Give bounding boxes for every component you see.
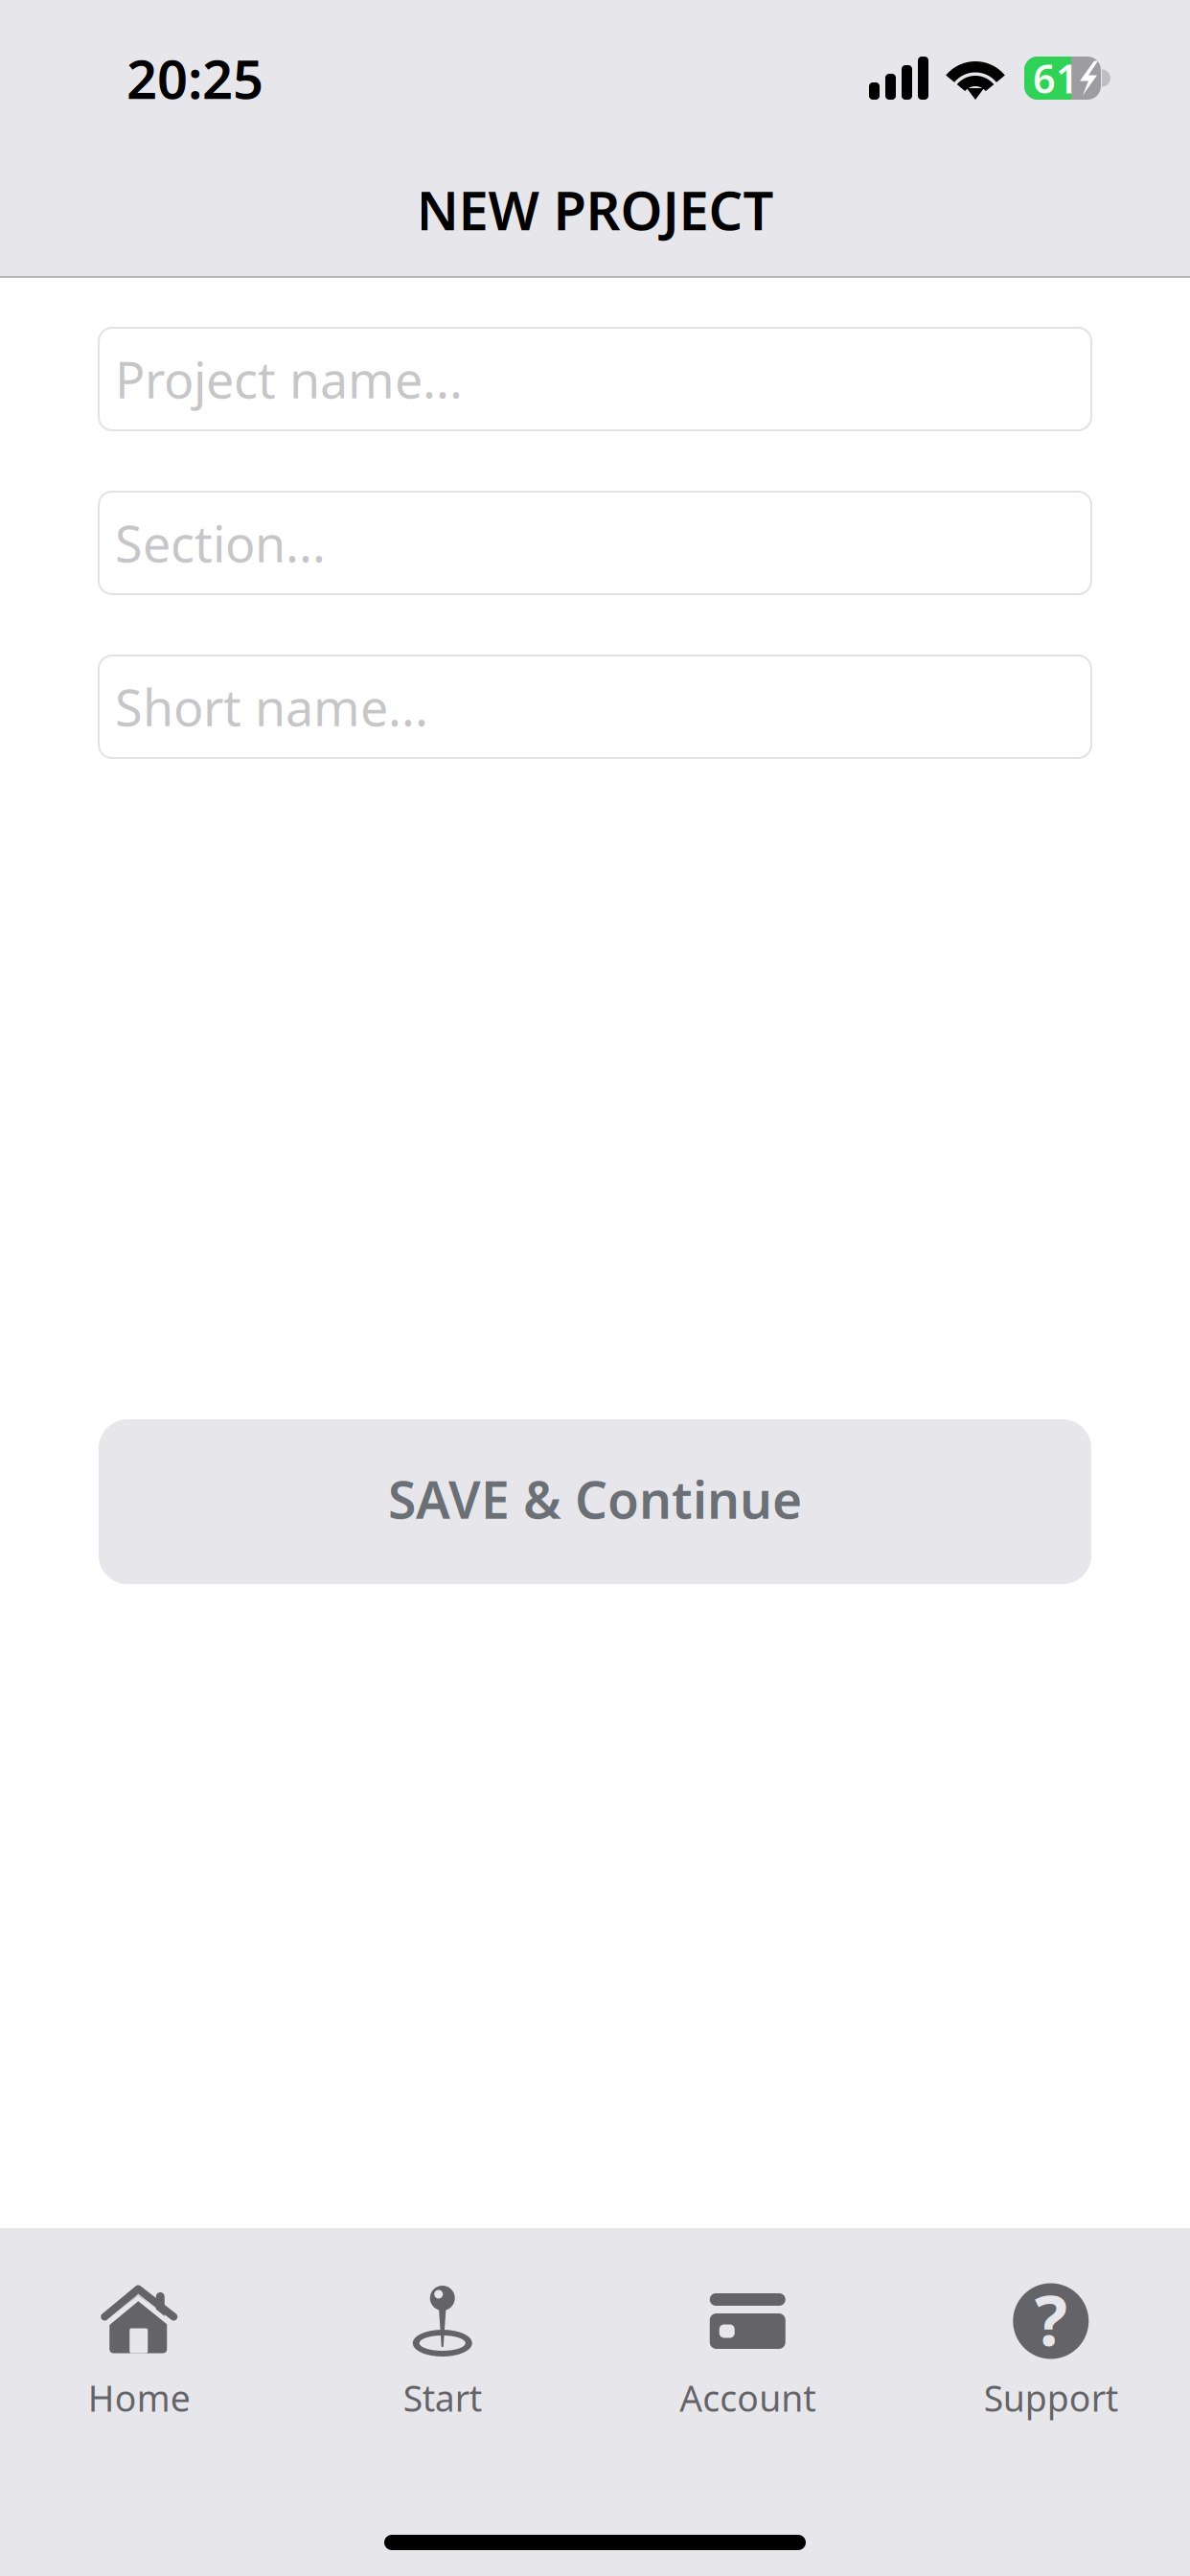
staticText: Project name...	[115, 346, 463, 412]
staticText: Support	[984, 2374, 1118, 2422]
staticText: 61	[1033, 52, 1079, 104]
staticText: Start	[403, 2374, 482, 2422]
button[interactable]: Start	[297, 2283, 595, 2417]
staticText: ?	[1035, 2273, 1067, 2365]
staticText: Home	[88, 2374, 190, 2422]
button[interactable]: Section...	[99, 492, 1091, 594]
staticText: Short name...	[115, 674, 428, 740]
button[interactable]: Account	[595, 2283, 892, 2417]
staticText: SAVE & Continue	[388, 1465, 802, 1533]
staticText: NEW PROJECT	[416, 174, 774, 245]
staticText: 20:25	[126, 42, 263, 114]
staticText: Account	[680, 2374, 816, 2422]
staticText: Section...	[115, 510, 326, 576]
button[interactable]: Short name...	[99, 655, 1091, 758]
button[interactable]: Support	[892, 2283, 1190, 2417]
button[interactable]: Home	[0, 2283, 297, 2417]
button[interactable]: Project name...	[99, 328, 1091, 430]
button[interactable]: SAVE & Continue	[99, 1419, 1091, 1584]
